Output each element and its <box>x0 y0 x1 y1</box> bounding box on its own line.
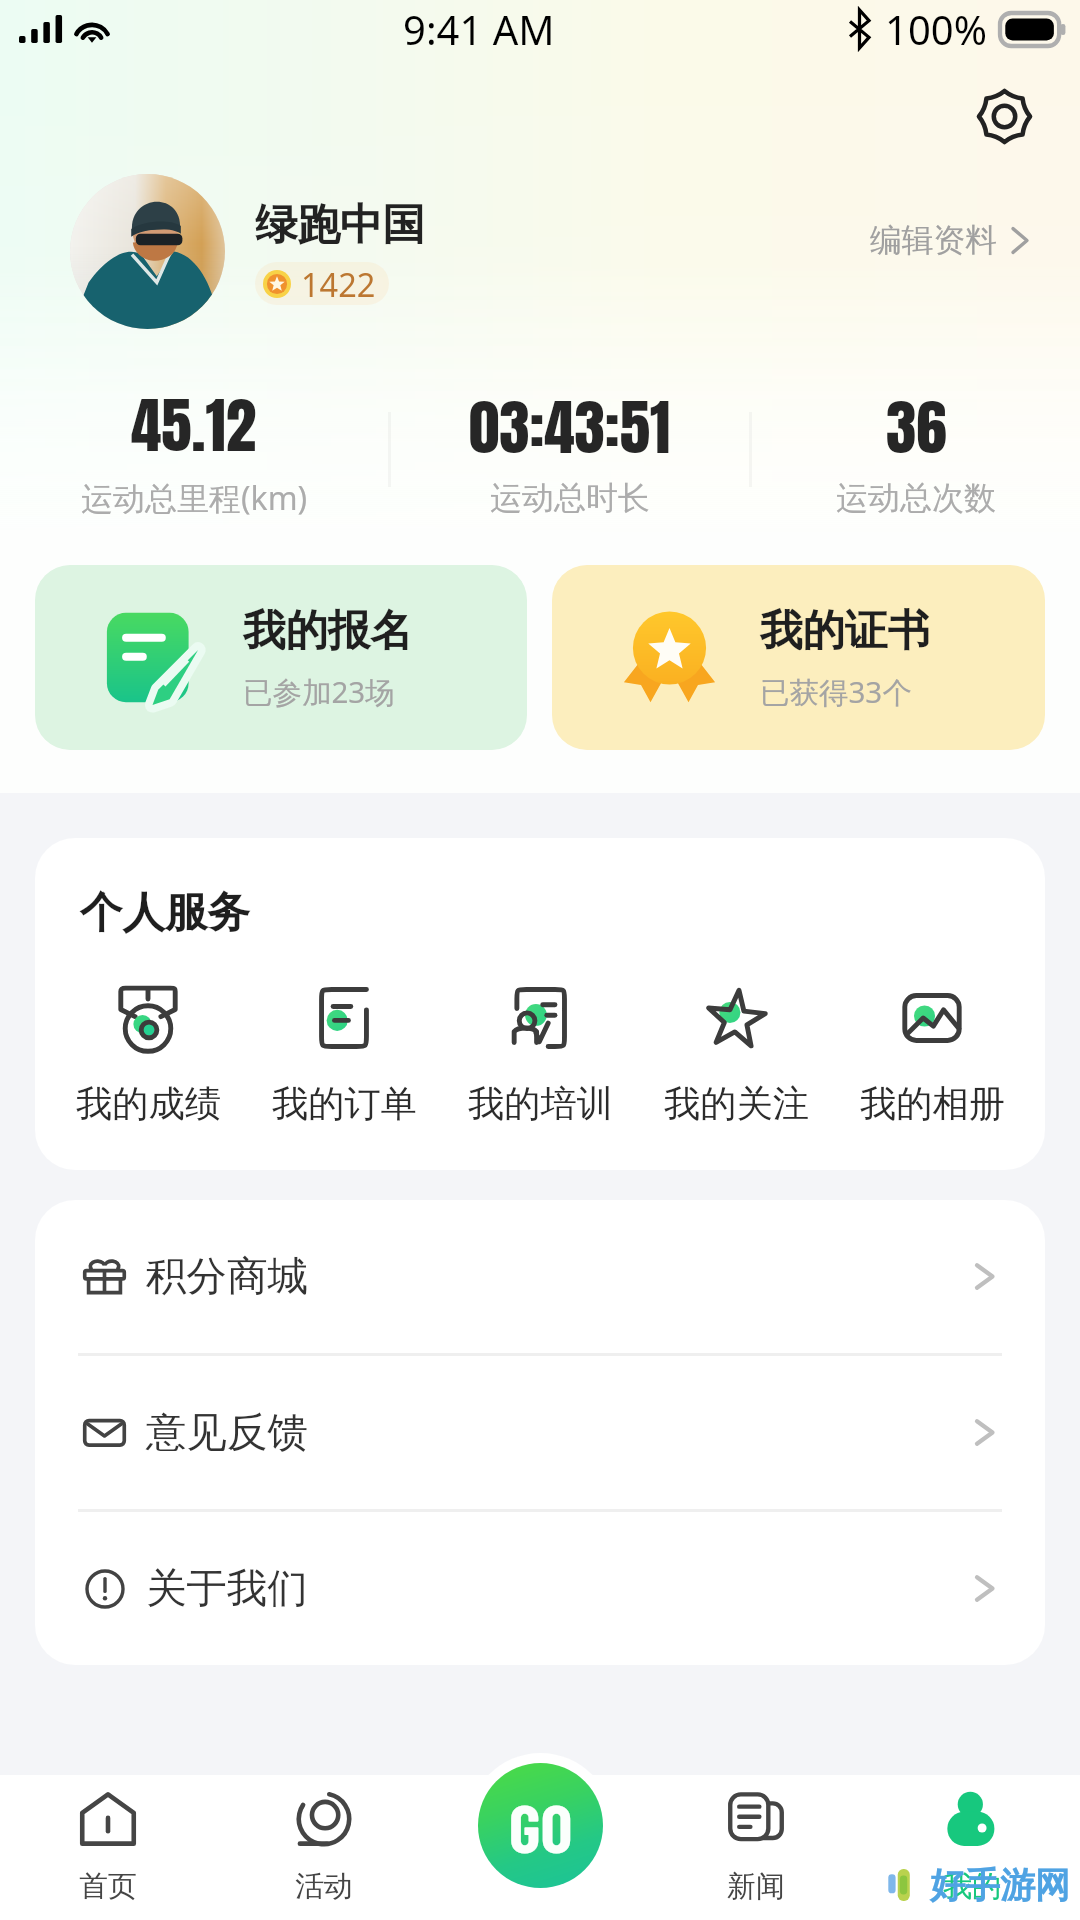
staticText: 好手游网 <box>930 1863 1070 1907</box>
staticText: 45.12 <box>131 379 257 471</box>
staticText: 已参加23场 <box>243 671 395 711</box>
button[interactable]: 关于我们 <box>35 1512 1045 1665</box>
button[interactable]: 我的成绩 <box>50 983 246 1127</box>
staticText: GO <box>509 1785 573 1866</box>
button[interactable]: 积分商城 <box>35 1200 1045 1353</box>
button[interactable]: 我的报名 <box>35 565 527 750</box>
button[interactable]: 我的关注 <box>638 983 834 1127</box>
staticText: 绿跑中国 <box>255 198 425 252</box>
button[interactable]: 新闻 <box>648 1775 864 1920</box>
staticText: 编辑资料 <box>870 220 997 260</box>
staticText: 我的 <box>943 1868 1001 1905</box>
button[interactable]: 1422 <box>255 262 389 305</box>
staticText: 活动 <box>295 1868 353 1905</box>
button[interactable]: 我的相册 <box>834 983 1030 1127</box>
staticText: 运动总次数 <box>836 478 996 518</box>
staticText: 我的培训 <box>468 1081 613 1127</box>
button[interactable]: 编辑资料 <box>870 207 1030 297</box>
button[interactable]: Settings <box>962 74 1047 159</box>
staticText: 100% <box>885 2 987 56</box>
staticText: 新闻 <box>727 1868 785 1905</box>
staticText: 运动总时长 <box>490 478 650 518</box>
staticText: 我的订单 <box>272 1081 417 1127</box>
staticText: 关于我们 <box>146 1563 308 1614</box>
staticText: 我的报名 <box>243 604 413 658</box>
button[interactable]: Profile photo <box>70 174 225 329</box>
staticText: 我的关注 <box>664 1081 809 1127</box>
staticText: 9:41 AM <box>403 2 555 56</box>
staticText: 意见反馈 <box>146 1407 308 1458</box>
staticText: 个人服务 <box>80 886 250 940</box>
staticText: 运动总里程(km) <box>81 476 308 520</box>
staticText: 03:43:51 <box>469 381 671 473</box>
button[interactable]: 意见反馈 <box>35 1356 1045 1509</box>
button[interactable]: GO start run <box>478 1763 603 1888</box>
staticText: 已获得33个 <box>760 671 912 711</box>
button[interactable]: 我的订单 <box>246 983 442 1127</box>
button[interactable]: 首页 <box>0 1775 216 1920</box>
button[interactable]: 我的 <box>864 1775 1080 1920</box>
staticText: 1422 <box>301 262 376 305</box>
staticText: 我的相册 <box>860 1081 1005 1127</box>
button[interactable]: 我的证书 <box>552 565 1045 750</box>
staticText: 首页 <box>79 1868 137 1905</box>
staticText: 积分商城 <box>146 1251 308 1302</box>
staticText: 36 <box>886 381 947 473</box>
staticText: 我的成绩 <box>76 1081 221 1127</box>
staticText: 我的证书 <box>760 604 930 658</box>
button[interactable]: 活动 <box>216 1775 432 1920</box>
button[interactable]: 我的培训 <box>442 983 638 1127</box>
